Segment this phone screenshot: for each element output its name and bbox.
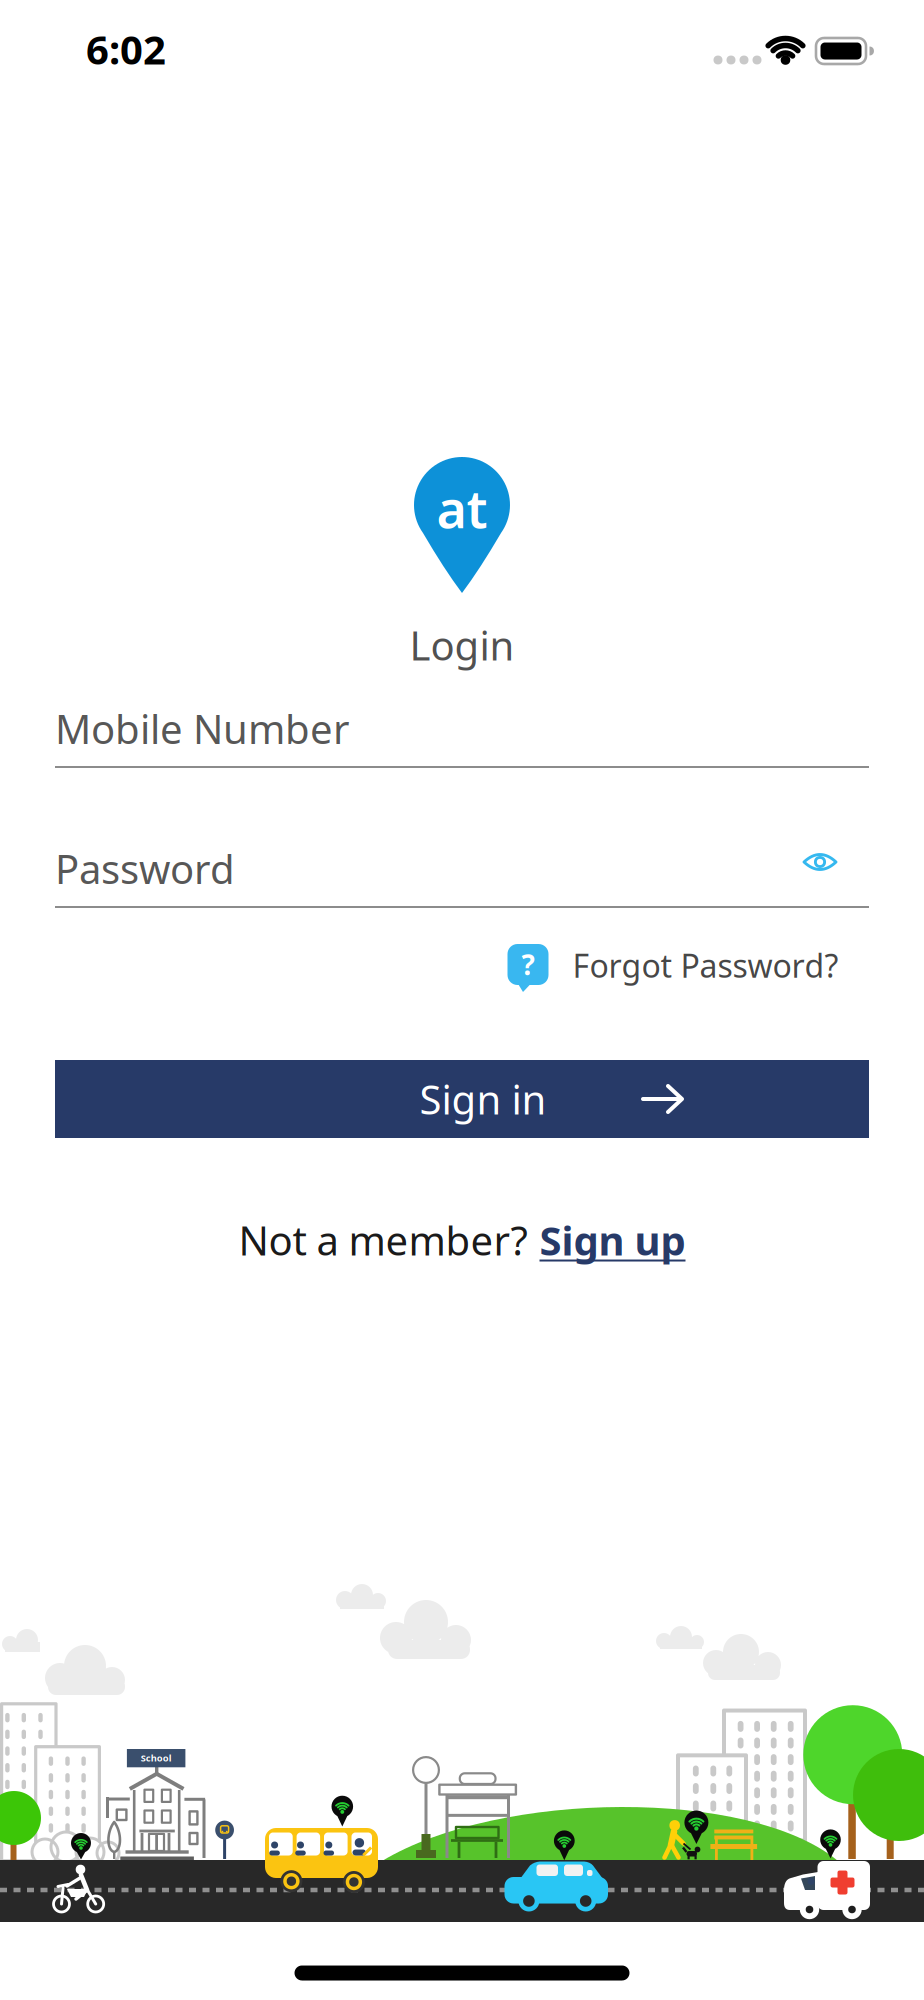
staticText: Password (55, 842, 235, 895)
button[interactable]: Password (55, 832, 869, 908)
staticText: Sign up (539, 1213, 685, 1266)
button[interactable]: Sign in (55, 1060, 869, 1138)
button[interactable]: Show password (800, 847, 840, 877)
staticText: ? (521, 946, 534, 983)
staticText: 6:02 (86, 22, 166, 75)
staticText: at (436, 473, 487, 543)
button[interactable]: Mobile Number (55, 692, 869, 768)
staticText: School (141, 1752, 172, 1764)
staticText: Not a member? (238, 1213, 527, 1266)
button[interactable]: Sign up (539, 1213, 685, 1266)
staticText: Forgot Password? (572, 944, 838, 986)
staticText: Sign in (419, 1072, 546, 1125)
staticText: Mobile Number (55, 702, 350, 755)
button[interactable]: ? (507, 944, 838, 992)
staticText: Login (409, 618, 514, 671)
